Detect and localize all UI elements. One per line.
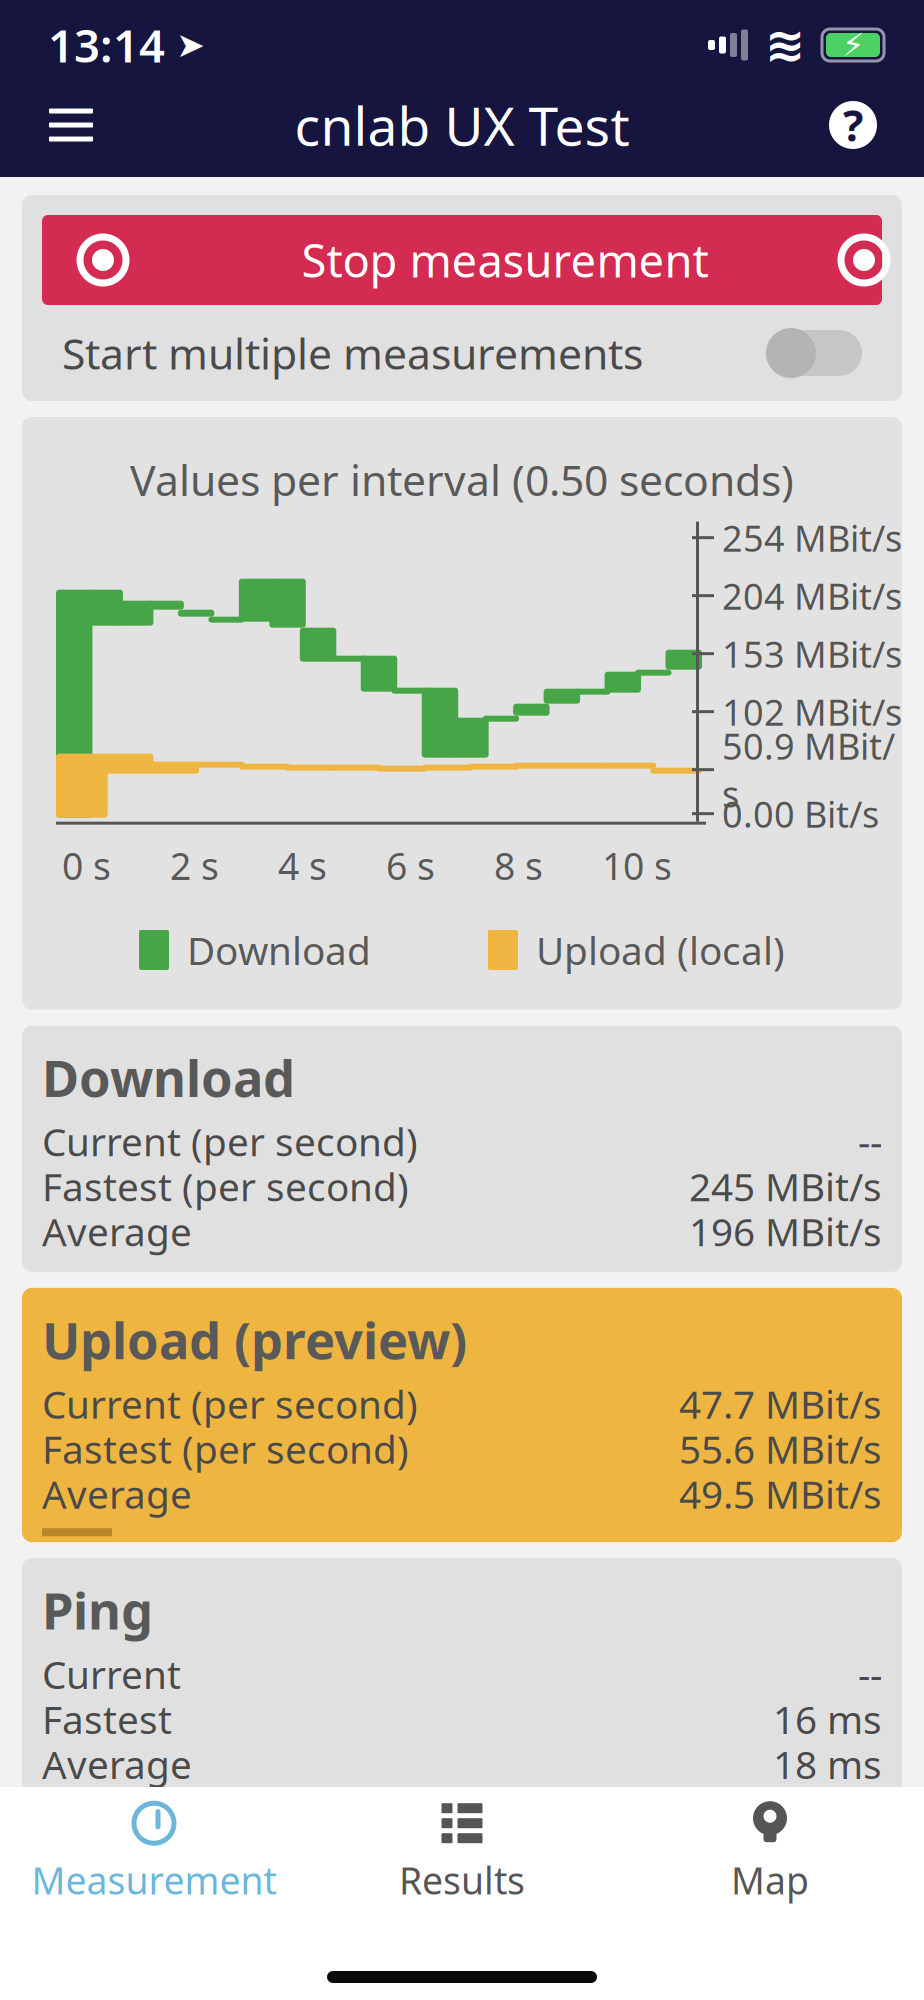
staticText: 16 ms — [773, 1693, 882, 1745]
staticText: 245 MBit/s — [689, 1161, 882, 1212]
staticText: Measurement — [31, 1855, 276, 1905]
staticText: 18 ms — [773, 1738, 882, 1790]
button[interactable]: Measurement — [0, 1789, 308, 1915]
staticText: Download — [42, 1044, 295, 1111]
staticText: Ping — [42, 1576, 153, 1643]
button[interactable]: Map — [616, 1789, 924, 1915]
staticText: 10 s — [602, 841, 672, 890]
staticText: 254 MBit/s — [722, 514, 902, 562]
staticText: Average — [42, 1738, 192, 1790]
button[interactable]: Help — [808, 85, 898, 165]
staticText: 102 MBit/s — [722, 688, 902, 736]
staticText: 4 s — [278, 841, 327, 890]
staticText: Current (per second) — [42, 1378, 418, 1429]
staticText: Upload (preview) — [42, 1306, 467, 1373]
staticText: ? — [843, 97, 863, 153]
staticText: Upload (local) — [536, 924, 785, 975]
button[interactable]: Start multiple measurements — [42, 305, 882, 401]
staticText: Map — [731, 1855, 809, 1905]
staticText: 153 MBit/s — [722, 630, 902, 678]
staticText: Download — [187, 924, 371, 975]
staticText: ≋ — [765, 18, 805, 72]
staticText: Average — [42, 1468, 192, 1519]
staticText: 50.9 MBit/s — [722, 722, 895, 817]
staticText: Values per interval (0.50 seconds) — [130, 451, 794, 508]
staticText: 204 MBit/s — [722, 572, 902, 620]
staticText: -- — [858, 1116, 882, 1167]
staticText: cnlab UX Test — [294, 90, 629, 160]
staticText: 0 s — [62, 841, 111, 890]
staticText: 6 s — [386, 841, 435, 890]
button[interactable]: Menu — [26, 85, 116, 165]
staticText: Fastest (per second) — [42, 1161, 409, 1212]
button[interactable]: Stop measurement — [42, 215, 882, 305]
staticText: ➤ — [165, 25, 205, 65]
staticText: Stop measurement — [301, 230, 708, 290]
staticText: 2 s — [170, 841, 219, 890]
staticText: Current (per second) — [42, 1116, 418, 1167]
staticText: Fastest (per second) — [42, 1423, 409, 1474]
staticText: 49.5 MBit/s — [679, 1468, 882, 1519]
staticText: 13:14 — [48, 15, 165, 75]
staticText: -- — [858, 1648, 882, 1700]
staticText: 0.00 Bit/s — [722, 790, 879, 838]
staticText: 196 MBit/s — [689, 1206, 882, 1257]
staticText: Average — [42, 1206, 192, 1257]
staticText: 8 s — [494, 841, 543, 890]
staticText: ⚡︎ — [842, 27, 864, 63]
staticText: Current — [42, 1648, 181, 1700]
staticText: 55.6 MBit/s — [679, 1423, 882, 1474]
staticText: Fastest — [42, 1693, 172, 1745]
button[interactable]: Results — [308, 1789, 616, 1915]
staticText: 47.7 MBit/s — [679, 1378, 882, 1429]
staticText: Start multiple measurements — [62, 325, 643, 381]
staticText: Results — [399, 1855, 525, 1905]
